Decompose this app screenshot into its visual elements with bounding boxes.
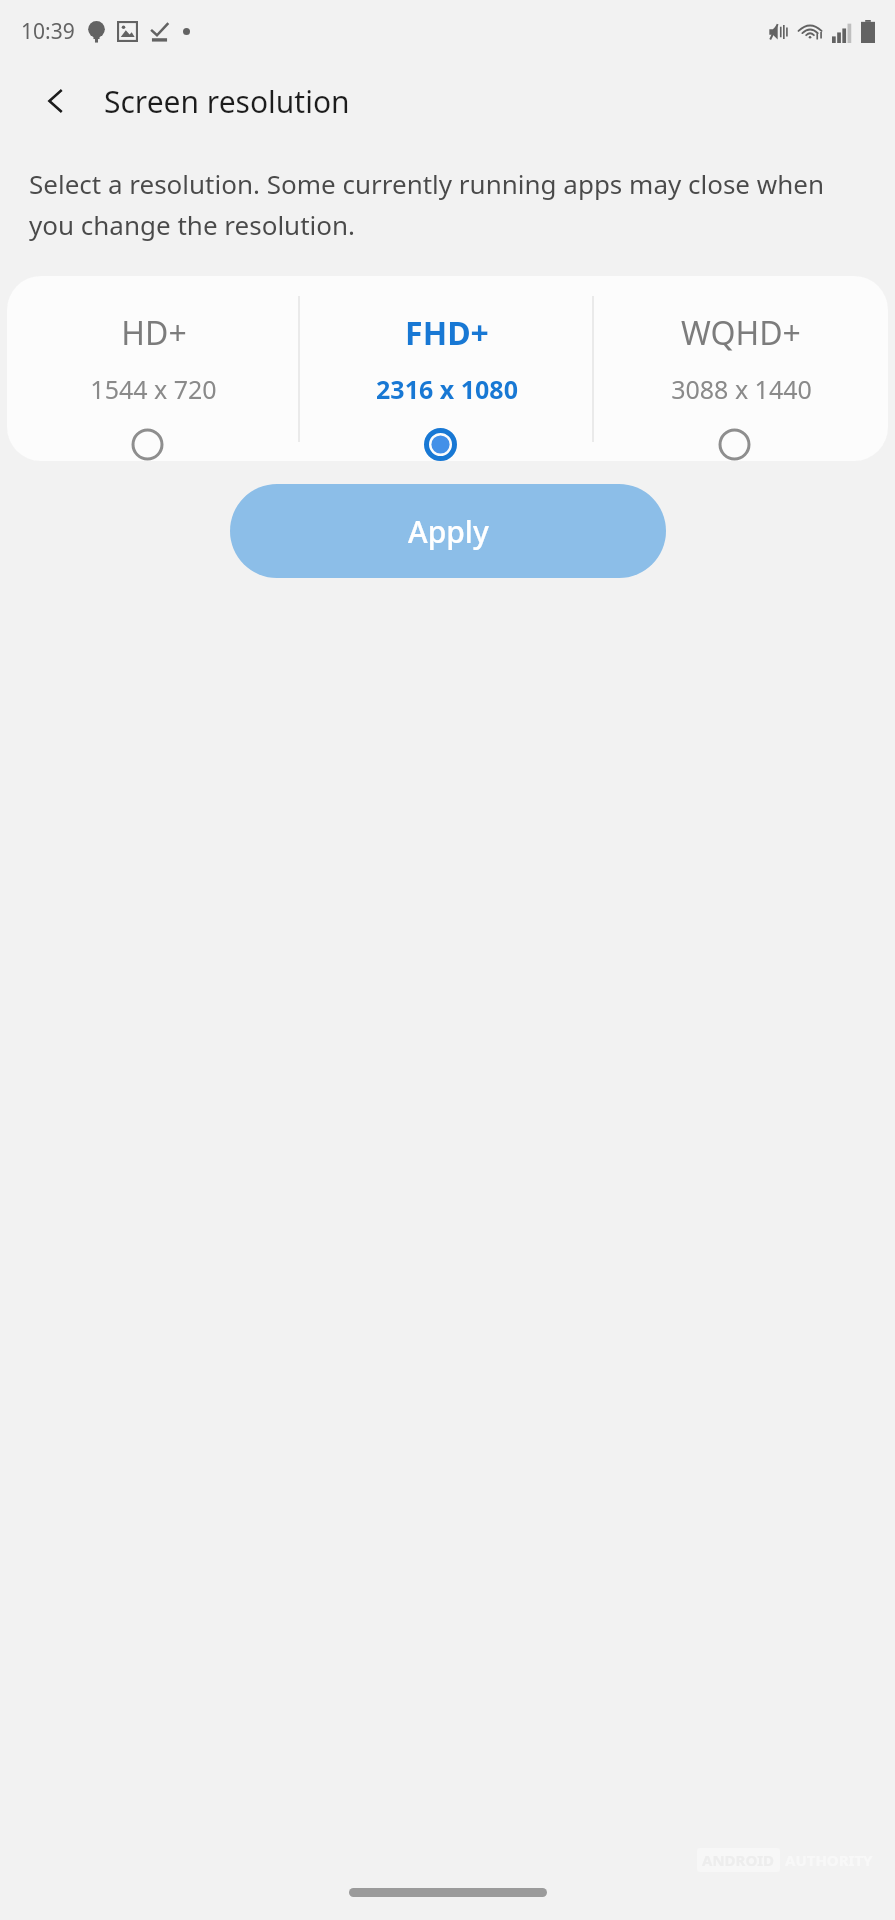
button[interactable]: FHD+ <box>300 276 594 461</box>
staticText: ANDROID <box>702 1850 775 1870</box>
button[interactable]: HD+ <box>7 276 300 461</box>
staticText: Apply <box>408 511 489 552</box>
button[interactable]: WQHD+ <box>594 276 888 461</box>
staticText: Select a resolution. Some currently runn… <box>29 166 866 243</box>
staticText: 2316 x 1080 <box>376 372 518 406</box>
button[interactable]: Home <box>349 1888 547 1897</box>
staticText: 3088 x 1440 <box>671 372 812 406</box>
staticText: Screen resolution <box>104 81 350 122</box>
staticText: 1544 x 720 <box>90 372 217 406</box>
staticText: FHD+ <box>405 311 489 355</box>
staticText: HD+ <box>121 311 187 355</box>
button[interactable]: Back <box>30 75 82 127</box>
staticText: 10:39 <box>21 17 75 46</box>
staticText: WQHD+ <box>681 311 801 355</box>
button[interactable]: Apply <box>230 484 666 578</box>
